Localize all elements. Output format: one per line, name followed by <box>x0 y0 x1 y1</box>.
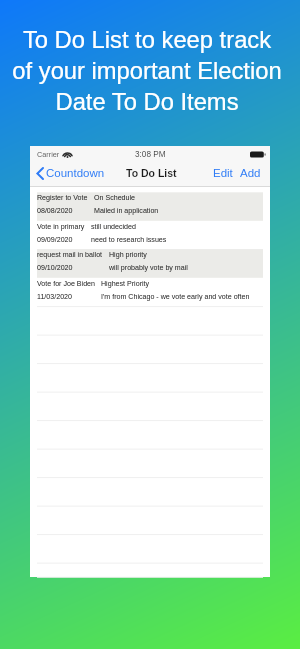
button[interactable]: Register to Vote <box>30 192 270 221</box>
staticText: still undecided <box>91 223 136 231</box>
button[interactable]: request mail in ballot <box>30 249 270 278</box>
staticText: High priority <box>109 251 147 259</box>
staticText: 3:08 PM <box>135 150 166 159</box>
staticText: Vote for Joe Biden <box>37 280 95 288</box>
staticText: 09/09/2020 <box>37 236 73 244</box>
staticText: 11/03/2020 <box>37 293 72 301</box>
staticText: High priority <box>109 251 147 259</box>
button[interactable]: Vote for Joe Biden <box>30 278 270 307</box>
button[interactable]: Back <box>30 167 109 180</box>
staticText: On Schedule <box>94 194 136 202</box>
button[interactable]: Add <box>240 167 261 180</box>
staticText: request mail in ballot <box>37 251 103 259</box>
staticText: 11/03/2020 <box>37 293 72 301</box>
staticText: need to research issues <box>91 236 167 244</box>
staticText: Vote in primary <box>37 223 85 231</box>
staticText: will probably vote by mail <box>109 264 188 272</box>
staticText: Highest Priority <box>101 280 150 288</box>
staticText: I'm from Chicago - we vote early and vot… <box>101 293 250 301</box>
staticText: Mailed in application <box>94 207 159 215</box>
button[interactable]: Vote in primary <box>30 221 270 250</box>
staticText: 09/09/2020 <box>37 236 73 244</box>
staticText: 09/10/2020 <box>37 264 73 272</box>
staticText: 08/08/2020 <box>37 207 73 215</box>
button[interactable]: Edit <box>213 167 233 180</box>
staticText: Countdown <box>46 167 105 180</box>
other: Wi-Fi signal <box>63 151 72 158</box>
staticText: Register to Vote <box>37 194 88 202</box>
staticText: request mail in ballot <box>37 251 103 259</box>
staticText: Vote for Joe Biden <box>37 280 95 288</box>
staticText: Highest Priority <box>101 280 150 288</box>
staticText: To Do List <box>126 167 177 179</box>
staticText: I'm from Chicago - we vote early and vot… <box>101 293 250 301</box>
staticText: Mailed in application <box>94 207 159 215</box>
staticText: To Do List to keep track of your importa… <box>0 26 297 115</box>
other: Back <box>36 167 44 180</box>
staticText: Carrier <box>37 150 60 158</box>
staticText: still undecided <box>91 223 136 231</box>
staticText: Vote in primary <box>37 223 85 231</box>
staticText: will probably vote by mail <box>109 264 188 272</box>
staticText: 09/10/2020 <box>37 264 73 272</box>
staticText: Register to Vote <box>37 194 88 202</box>
staticText: On Schedule <box>94 194 136 202</box>
staticText: need to research issues <box>91 236 167 244</box>
staticText: 08/08/2020 <box>37 207 73 215</box>
